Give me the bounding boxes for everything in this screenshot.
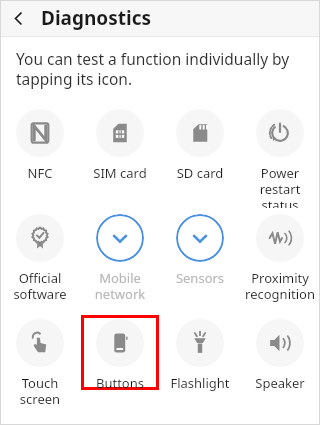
button[interactable]: Touch screen [0,313,80,418]
button[interactable]: NFC [0,103,80,208]
staticText: Sensors [161,269,239,287]
staticText: Mobile network [81,269,159,302]
staticText: Flashlight [161,374,239,392]
staticText: Speaker [241,374,319,392]
staticText: NFC [1,164,79,182]
button[interactable]: Back [0,0,36,36]
staticText: SD card [161,164,239,182]
button[interactable]: Sensors [160,208,240,313]
staticText: SIM card [81,164,159,182]
button[interactable]: Power restart status [240,103,320,208]
staticText: Touch screen [1,374,79,407]
button[interactable]: Proximity recognition [240,208,320,313]
button[interactable]: Flashlight [160,313,240,418]
button[interactable]: Official software [0,208,80,313]
staticText: Official software [1,269,79,302]
staticText: Diagnostics [41,5,152,31]
button[interactable]: SIM card [80,103,160,208]
staticText: Power restart status [241,164,319,208]
button[interactable]: SD card [160,103,240,208]
staticText: You can test a function individually by … [16,48,290,89]
button[interactable]: Speaker [240,313,320,418]
staticText: Proximity recognition [241,269,319,302]
button[interactable]: Buttons [80,313,160,418]
button[interactable]: Mobile network [80,208,160,313]
staticText: Buttons [81,374,159,392]
